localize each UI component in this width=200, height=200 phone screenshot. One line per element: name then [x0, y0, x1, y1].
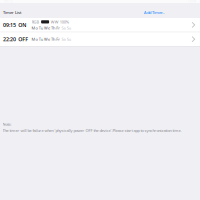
- staticText: OFF: [18, 36, 28, 43]
- staticText: WW 100%: [51, 19, 69, 24]
- staticText: Tu: [39, 36, 43, 42]
- staticText: Tu: [39, 25, 43, 31]
- staticText: Sa: [61, 25, 65, 31]
- staticText: Timer List: [3, 10, 21, 15]
- staticText: Su: [67, 36, 71, 42]
- staticText: Mo: [31, 25, 37, 31]
- staticText: Th: [51, 36, 55, 42]
- staticText: Fr: [56, 36, 60, 42]
- staticText: Add Timer...: [144, 10, 165, 15]
- staticText: Note:: [2, 122, 11, 127]
- staticText: Su: [67, 25, 71, 31]
- button[interactable]: 22:20: [0, 32, 200, 46]
- staticText: RGB: [31, 19, 39, 24]
- button[interactable]: 09:15: [0, 18, 200, 32]
- staticText: 09:15: [3, 21, 16, 28]
- staticText: We: [44, 25, 50, 31]
- staticText: Fr: [56, 25, 60, 31]
- staticText: Th: [51, 25, 55, 31]
- staticText: We: [44, 36, 50, 42]
- staticText: ON: [18, 21, 26, 28]
- staticText: The timer will be failure when 'physical…: [2, 128, 181, 133]
- button[interactable]: Add Timer...: [144, 10, 200, 15]
- staticText: Mo: [31, 36, 37, 42]
- staticText: Sa: [61, 36, 65, 42]
- staticText: 22:20: [3, 36, 16, 43]
